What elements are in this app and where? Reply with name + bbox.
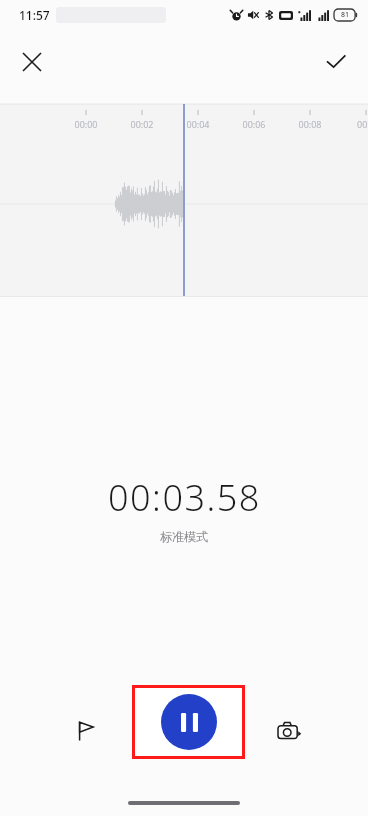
staticText: 00:06 bbox=[236, 118, 272, 130]
staticText: 标准模式 bbox=[160, 529, 208, 544]
staticText: 00:08 bbox=[292, 118, 328, 130]
button[interactable]: Camera bbox=[268, 709, 312, 753]
staticText: 00:03.58 bbox=[108, 473, 261, 522]
staticText: 00:02 bbox=[124, 118, 160, 130]
staticText: 11:57 bbox=[19, 7, 50, 23]
staticText: 00:04 bbox=[180, 118, 216, 130]
button[interactable]: Done bbox=[312, 38, 360, 86]
button[interactable]: Pause recording bbox=[132, 685, 245, 759]
button[interactable]: Add mark bbox=[64, 709, 108, 753]
staticText: 00:00 bbox=[68, 118, 104, 130]
button[interactable]: Close bbox=[8, 38, 56, 86]
staticText: 81 bbox=[341, 10, 350, 20]
staticText: 00:1 bbox=[348, 118, 368, 130]
